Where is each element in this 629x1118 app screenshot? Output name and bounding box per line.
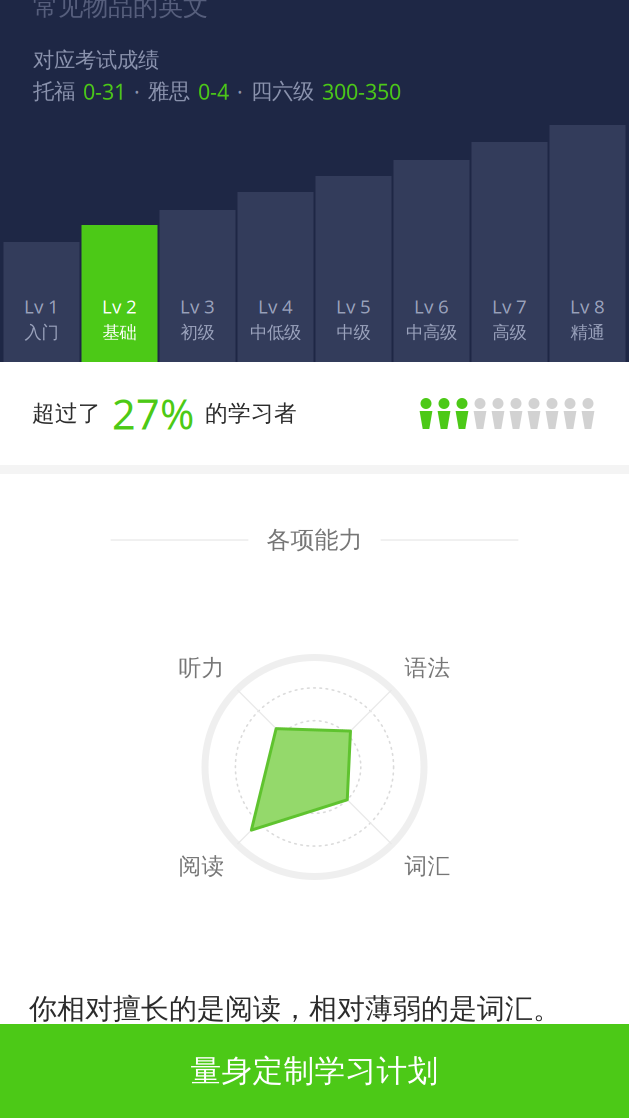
staticText: 精通 [570,322,604,343]
staticText: 四六级 [251,78,314,105]
staticText: 27% [101,386,205,441]
staticText: 中高级 [406,322,457,343]
button[interactable]: Lv 7 [471,142,547,362]
staticText: Lv 1 [24,294,59,319]
staticText: 基础 [102,322,136,343]
staticText: Lv 4 [258,294,293,319]
staticText: Lv 6 [414,294,449,319]
staticText: 阅读 [178,852,224,880]
staticText: 初级 [180,322,214,343]
staticText: 语法 [404,654,450,682]
staticText: 常见物品的英文 [33,0,208,22]
staticText: 托福 [33,78,75,105]
staticText: 入门 [24,322,58,343]
staticText: 中低级 [250,322,301,343]
button[interactable]: Lv 1 [3,242,79,362]
staticText: 雅思 [148,78,190,105]
staticText: 对应考试成绩 [33,47,159,73]
button[interactable]: Lv 3 [159,210,235,362]
staticText: · [134,77,140,106]
staticText: 各项能力 [266,525,362,555]
staticText: 0-31 [83,77,126,106]
staticText: · [237,77,243,106]
staticText: 听力 [178,654,224,682]
staticText: 0-4 [198,77,229,106]
button[interactable]: Lv 2 [81,225,157,362]
staticText: 中级 [336,322,370,343]
staticText: 300-350 [322,77,401,106]
staticText: Lv 7 [492,294,527,319]
staticText: Lv 2 [102,294,137,319]
button[interactable]: Lv 4 [237,192,313,362]
staticText: Lv 3 [180,294,215,319]
staticText: 高级 [492,322,526,343]
button[interactable]: Lv 6 [393,160,469,362]
staticText: 量身定制学习计划 [190,1052,438,1090]
staticText: 你相对擅长的是阅读，相对薄弱的是词汇。 [29,992,561,1026]
button[interactable]: 量身定制学习计划 [0,1024,629,1118]
staticText: Lv 5 [336,294,371,319]
staticText: Lv 8 [570,294,605,319]
staticText: 词汇 [404,852,450,880]
staticText: 超过了 [32,400,101,427]
staticText: 的学习者 [205,400,297,427]
button[interactable]: Lv 8 [549,125,625,362]
button[interactable]: Lv 5 [315,176,391,362]
